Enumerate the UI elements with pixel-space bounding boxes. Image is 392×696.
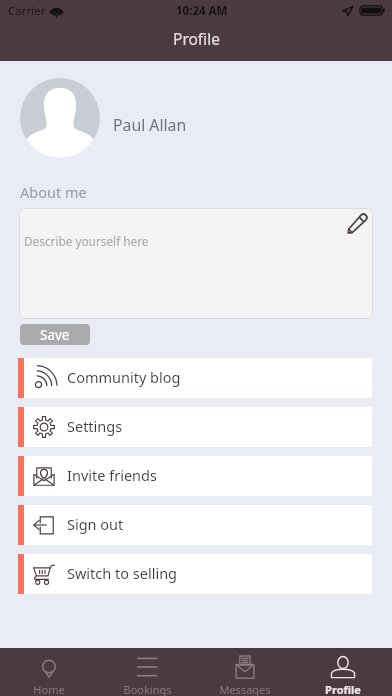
button[interactable]: Profile	[294, 648, 392, 696]
button[interactable]: Edit about me	[346, 212, 369, 235]
staticText: Switch to selling	[67, 563, 178, 583]
staticText: About me	[20, 182, 87, 202]
button[interactable]: Community blog	[18, 358, 372, 398]
staticText: Messages	[219, 682, 271, 696]
staticText: 10:24 AM	[176, 3, 228, 19]
staticText: Describe yourself here	[24, 233, 149, 249]
staticText: Profile	[173, 28, 220, 49]
staticText: Profile	[325, 682, 361, 696]
button[interactable]: Save	[20, 324, 90, 345]
staticText: Invite friends	[67, 465, 157, 485]
staticText: Sign out	[67, 514, 124, 534]
button[interactable]: Bookings	[98, 648, 196, 696]
staticText: Paul Allan	[113, 114, 187, 136]
button[interactable]: Home	[0, 648, 98, 696]
staticText: Save	[40, 326, 70, 344]
button[interactable]: Messages	[196, 648, 294, 696]
staticText: Settings	[67, 416, 123, 436]
staticText: Community blog	[67, 367, 181, 387]
button[interactable]: Sign out	[18, 505, 372, 545]
button[interactable]: Settings	[18, 407, 372, 447]
staticText: Bookings	[123, 682, 172, 696]
button[interactable]: Invite friends	[18, 456, 372, 496]
staticText: Home	[33, 682, 65, 696]
button[interactable]: Switch to selling	[18, 554, 372, 594]
staticText: Carrier	[8, 3, 46, 19]
